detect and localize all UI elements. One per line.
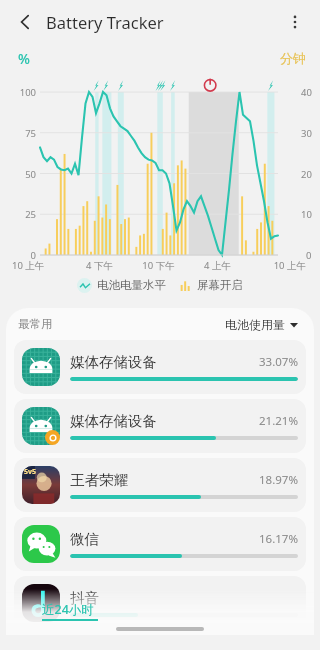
button[interactable]: 媒体存储设备 (14, 399, 306, 453)
staticText: % (18, 49, 30, 68)
staticText: 0 (306, 249, 312, 262)
staticText: 10 上午 (247, 259, 306, 272)
staticText: 21.21% (259, 413, 298, 429)
staticText: 0 (8, 249, 36, 262)
button[interactable]: 抖音 (14, 576, 306, 630)
staticText: 最常用 (18, 317, 53, 331)
staticText: 100 (8, 86, 36, 99)
staticText: 20 (301, 168, 312, 181)
staticText: Battery Tracker (46, 11, 164, 33)
staticText: 25 (8, 208, 36, 221)
staticText: 33.07% (259, 354, 298, 370)
staticText: 5v5 (24, 467, 37, 477)
button[interactable]: 5v5 (14, 458, 306, 512)
staticText: 抖音 (70, 589, 99, 607)
button[interactable]: 微信 (14, 517, 306, 571)
staticText: 30 (301, 127, 312, 140)
staticText: 10 下午 (129, 259, 188, 272)
staticText: 75 (8, 127, 36, 140)
button[interactable]: More options (278, 5, 312, 39)
staticText: 40 (301, 86, 312, 99)
staticText: 4 上午 (188, 259, 247, 272)
staticText: 媒体存储设备 (70, 412, 157, 430)
staticText: 50 (8, 168, 36, 181)
staticText: 媒体存储设备 (70, 353, 157, 371)
staticText: 10 上午 (12, 259, 70, 272)
staticText: 近24小时 (42, 601, 94, 618)
staticText: 18.97% (259, 472, 298, 488)
staticText: 王者荣耀 (70, 471, 128, 489)
button[interactable]: 媒体存储设备 (14, 340, 306, 394)
staticText: 微信 (70, 530, 99, 548)
button[interactable]: 近24小时 (42, 601, 98, 621)
staticText: 屏幕开启 (197, 278, 243, 292)
staticText: 分钟 (280, 50, 306, 66)
staticText: 电池电量水平 (97, 278, 166, 292)
button[interactable]: Back (8, 5, 42, 39)
staticText: 电池使用量 (225, 317, 285, 332)
staticText: 4 下午 (70, 259, 129, 272)
staticText: 10 (301, 208, 312, 221)
staticText: 16.17% (259, 531, 298, 547)
button[interactable]: 电池使用量 (221, 313, 302, 336)
